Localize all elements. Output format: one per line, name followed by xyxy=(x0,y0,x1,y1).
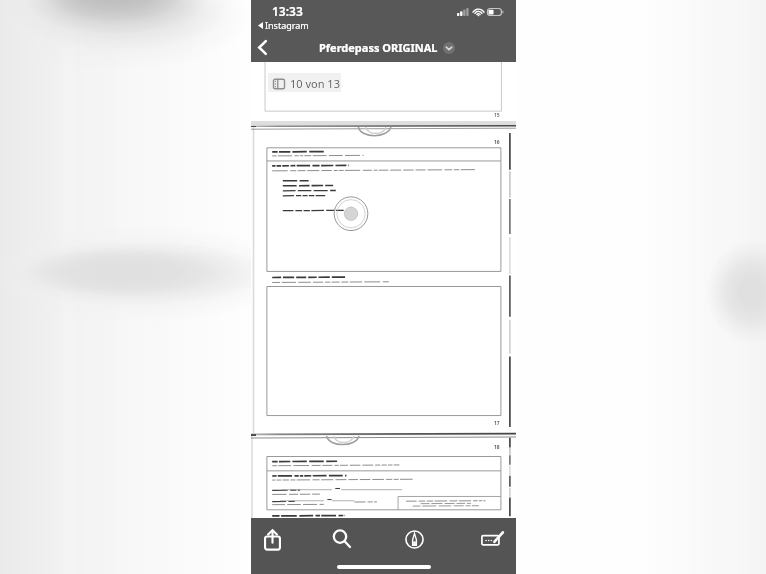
staticText: 10 von 13 xyxy=(290,76,340,91)
staticText: 18 xyxy=(494,444,500,451)
button[interactable]: Pferdepass ORIGINAL xyxy=(319,40,455,55)
staticText: 16 xyxy=(494,139,500,146)
staticText: Pferdepass ORIGINAL xyxy=(319,40,438,55)
staticText: 13:33 xyxy=(272,3,303,19)
button[interactable]: Share xyxy=(250,522,294,556)
staticText: Instagram xyxy=(265,19,309,31)
staticText: 15 xyxy=(494,112,500,119)
button[interactable]: Search xyxy=(320,522,364,556)
button[interactable]: Back xyxy=(247,32,277,62)
button[interactable]: Markup xyxy=(392,522,436,556)
button[interactable]: 10 von 13 xyxy=(273,76,340,91)
staticText: 17 xyxy=(494,420,500,427)
button[interactable]: Fill and Sign xyxy=(470,522,514,556)
